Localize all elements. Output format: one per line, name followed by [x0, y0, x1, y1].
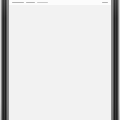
button[interactable]: Status icons — [102, 2, 108, 4]
